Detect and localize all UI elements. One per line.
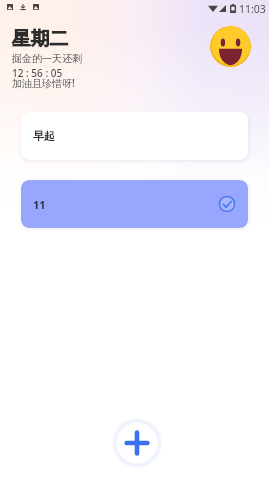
staticText: 12 : 56 : 05 [12, 66, 63, 80]
staticText: 星期二 [12, 27, 69, 51]
button[interactable]: 11 [21, 180, 248, 228]
button[interactable]: 早起 [21, 112, 248, 160]
staticText: 11:03 [239, 2, 266, 16]
staticText: 早起 [33, 129, 55, 143]
staticText: 加油且珍惜呀! [12, 76, 75, 90]
button[interactable]: Add [110, 416, 164, 470]
staticText: 11 [33, 197, 46, 212]
staticText: 掘金的一天还剩 [12, 52, 82, 65]
